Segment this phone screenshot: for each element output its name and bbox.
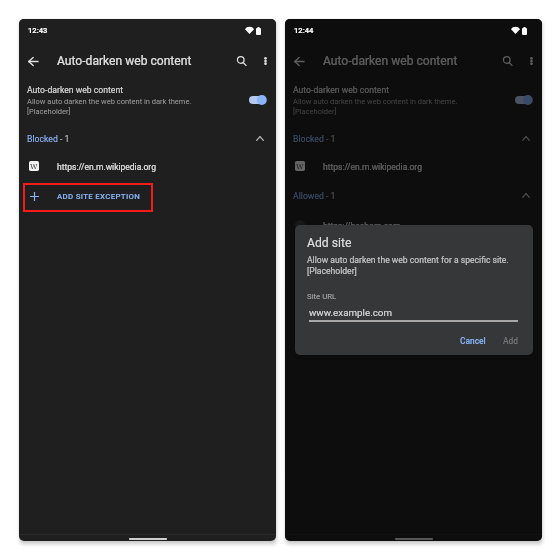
button[interactable]: Allowed - 1 (285, 186, 542, 207)
staticText: Allow auto darken the web content for a … (307, 255, 509, 276)
staticText: Add site (307, 236, 352, 250)
button[interactable]: Search (494, 47, 522, 75)
button[interactable]: Blocked - 1 (285, 129, 542, 150)
button[interactable]: Auto-darken toggle, on (240, 90, 270, 110)
button[interactable]: More options (251, 47, 276, 75)
staticText: Allow auto darken the web content in dar… (27, 97, 192, 115)
staticText: Add (503, 336, 519, 346)
staticText: Blocked - 1 (293, 134, 336, 144)
staticText: Site URL (307, 292, 337, 301)
staticText: W (30, 161, 38, 171)
staticText: ADD SITE EXCEPTION (57, 192, 141, 201)
staticText: 12:44 (294, 26, 314, 35)
staticText: Allowed - 1 (293, 191, 336, 201)
button[interactable]: ADD SITE EXCEPTION (23, 183, 153, 212)
staticText: W (296, 161, 304, 171)
staticText: Cancel (460, 336, 486, 346)
staticText: https://beebom.com (323, 221, 401, 231)
button[interactable]: Auto-darken web content (19, 81, 276, 117)
button[interactable]: Add (497, 332, 525, 350)
staticText: Auto-darken web content (27, 85, 124, 95)
button[interactable]: Back (285, 47, 313, 75)
button[interactable]: Auto-darken toggle, on (506, 90, 536, 110)
button[interactable]: More options (517, 47, 542, 75)
staticText: Auto-darken web content (323, 54, 458, 68)
button[interactable]: W (285, 157, 542, 179)
button[interactable]: Cancel (454, 332, 492, 350)
staticText: Allow auto darken the web content in dar… (293, 97, 458, 115)
staticText: www.example.com (309, 307, 393, 318)
staticText: Blocked - 1 (27, 134, 70, 144)
button[interactable]: W (19, 157, 276, 179)
staticText: https://en.m.wikipedia.org (323, 162, 422, 172)
staticText: Auto-darken web content (293, 85, 390, 95)
button[interactable]: Blocked - 1 (19, 129, 276, 150)
staticText: Auto-darken web content (57, 54, 192, 68)
staticText: 12:43 (28, 26, 48, 35)
button[interactable]: Search (228, 47, 256, 75)
button[interactable]: Back (19, 47, 47, 75)
button[interactable]: Auto-darken web content (285, 81, 542, 117)
staticText: https://en.m.wikipedia.org (57, 162, 156, 172)
button[interactable]: https://beebom.com (285, 216, 542, 238)
